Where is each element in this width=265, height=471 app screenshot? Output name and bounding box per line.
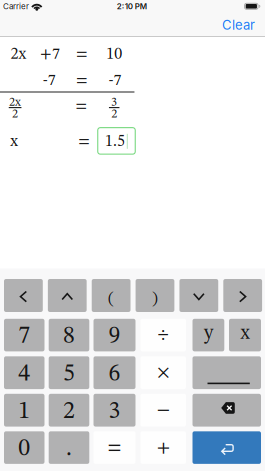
- staticText: 4: [18, 362, 30, 386]
- button[interactable]: 5: [49, 356, 89, 389]
- button[interactable]: [4, 279, 43, 312]
- staticText: =: [78, 134, 90, 150]
- staticText: 2x: [10, 46, 26, 62]
- staticText: 2: [12, 108, 18, 120]
- staticText: Carrier: [3, 1, 29, 11]
- staticText: ÷: [158, 326, 169, 344]
- staticText: x: [10, 134, 18, 150]
- staticText: +: [157, 438, 170, 457]
- staticText: y: [204, 324, 213, 343]
- button[interactable]: −: [140, 394, 186, 427]
- staticText: -7: [43, 73, 56, 89]
- button[interactable]: =: [93, 431, 135, 464]
- staticText: 5: [63, 362, 75, 386]
- staticText: 1: [18, 400, 30, 424]
- staticText: 7: [18, 325, 30, 349]
- staticText: 8: [63, 325, 75, 349]
- staticText: ): [152, 291, 158, 307]
- button[interactable]: [223, 279, 262, 312]
- staticText: 1.5: [105, 134, 125, 150]
- staticText: 10: [106, 46, 122, 62]
- button[interactable]: [192, 356, 261, 389]
- button[interactable]: ×: [140, 356, 186, 389]
- button[interactable]: 0: [4, 431, 44, 464]
- staticText: ×: [157, 363, 169, 382]
- button[interactable]: [179, 279, 218, 312]
- button[interactable]: 4: [4, 356, 44, 389]
- staticText: (: [108, 291, 114, 307]
- staticText: =: [107, 438, 121, 457]
- button[interactable]: 9: [93, 319, 135, 351]
- staticText: 2:10 PM: [117, 1, 147, 11]
- button[interactable]: [48, 279, 87, 312]
- staticText: 2x: [9, 96, 21, 108]
- button[interactable]: 7: [4, 319, 44, 351]
- staticText: =: [76, 46, 88, 62]
- staticText: 9: [108, 325, 120, 349]
- staticText: 0: [18, 437, 30, 461]
- button[interactable]: 3: [93, 394, 135, 427]
- button[interactable]: 2: [49, 394, 89, 427]
- staticText: x: [240, 324, 249, 343]
- button[interactable]: (: [92, 279, 130, 312]
- button[interactable]: 8: [49, 319, 89, 351]
- button[interactable]: y: [192, 319, 224, 351]
- staticText: 2: [111, 108, 117, 120]
- button[interactable]: Clear: [222, 17, 255, 33]
- button[interactable]: [192, 394, 261, 427]
- button[interactable]: 6: [93, 356, 135, 389]
- button[interactable]: [192, 431, 261, 464]
- button[interactable]: +: [140, 431, 186, 464]
- button[interactable]: 1: [4, 394, 44, 427]
- staticText: =: [76, 73, 88, 89]
- button[interactable]: x: [229, 319, 261, 351]
- staticText: 3: [111, 96, 117, 108]
- staticText: Clear: [222, 17, 255, 33]
- staticText: 6: [108, 362, 120, 386]
- staticText: -7: [108, 73, 121, 89]
- button[interactable]: 1.5: [97, 127, 136, 155]
- button[interactable]: ): [136, 279, 174, 312]
- staticText: +7: [40, 46, 60, 62]
- staticText: 2: [63, 400, 75, 424]
- staticText: =: [75, 99, 87, 115]
- staticText: −: [157, 401, 170, 420]
- staticText: 3: [108, 400, 120, 424]
- staticText: .: [66, 437, 72, 461]
- button[interactable]: .: [49, 431, 89, 464]
- button[interactable]: ÷: [140, 319, 186, 351]
